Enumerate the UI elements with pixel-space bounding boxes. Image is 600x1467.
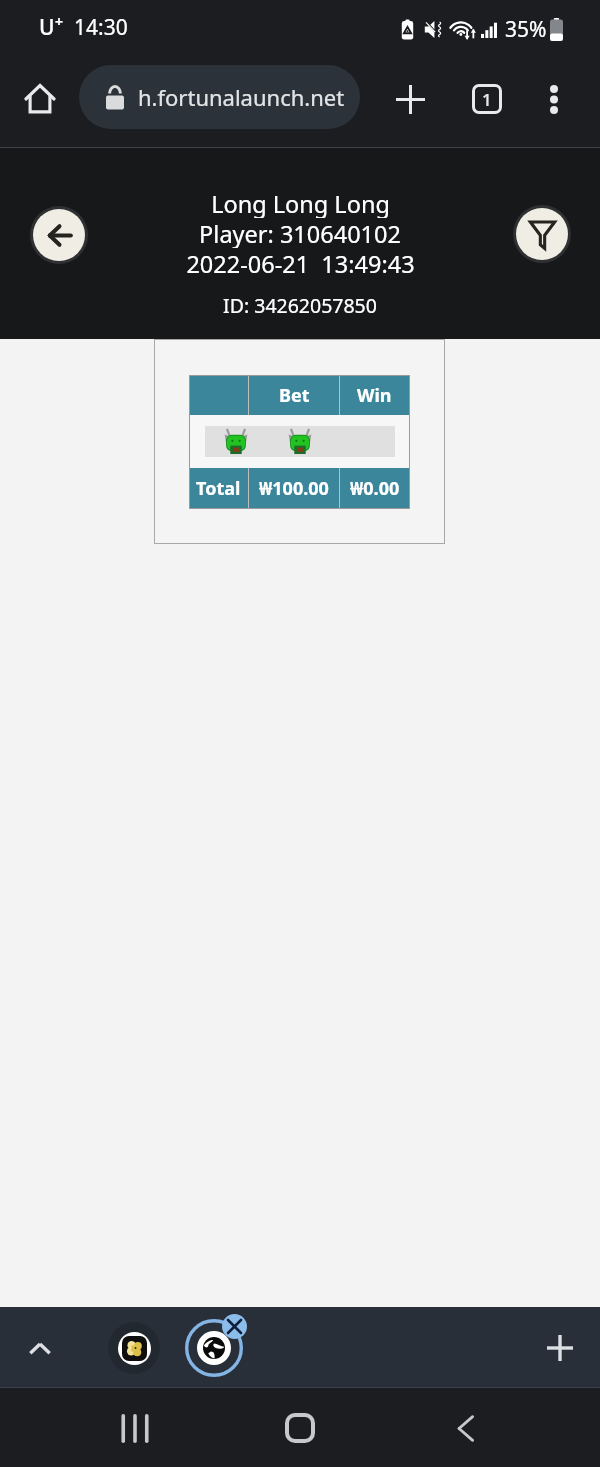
button[interactable]: More options [528,73,580,125]
staticText: Total [196,476,241,501]
staticText: 2022-06-21 13:49:43 [186,248,415,278]
button[interactable]: Filter [513,205,571,263]
button[interactable]: Back [435,1398,495,1458]
button[interactable]: Tabs [461,73,513,125]
staticText: 1 [482,88,492,111]
staticText: ₩0.00 [350,476,400,501]
staticText: + [55,12,64,31]
staticText: 35% [505,15,547,44]
staticText: Win [357,383,392,408]
button[interactable]: Home [14,76,66,125]
staticText: 14:30 [74,13,128,42]
staticText: U [39,13,55,42]
staticText: ID: 34262057850 [223,292,377,319]
staticText: ₩100.00 [259,476,329,501]
button[interactable]: h.fortunalaunch.net [79,65,360,129]
button[interactable]: Back [30,206,88,264]
button[interactable]: New tab [534,1322,586,1374]
staticText: h.fortunalaunch.net [138,82,345,112]
staticText: Bet [279,383,310,408]
staticText: Player: 310640102 [199,218,401,248]
button[interactable]: Close current tab [181,1315,247,1381]
button[interactable]: Home [270,1398,330,1458]
button[interactable]: Fortuna app [108,1322,160,1374]
button[interactable]: Expand toolbar [14,1322,66,1374]
button[interactable]: Recents [105,1398,165,1458]
staticText: Long Long Long [211,188,390,218]
button[interactable]: New tab [384,73,436,125]
